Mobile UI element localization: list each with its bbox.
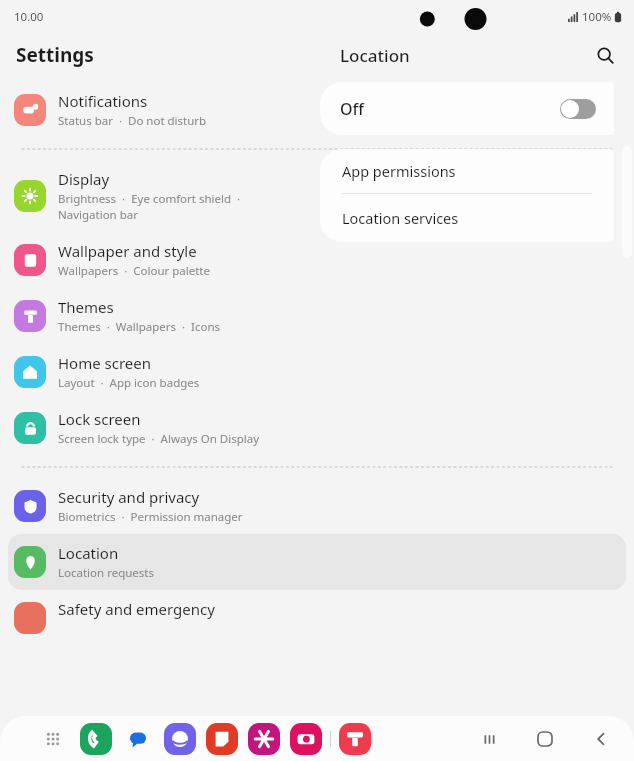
button[interactable]: Lock screen: [8, 400, 626, 456]
staticText: Location: [340, 44, 410, 67]
staticText: Screen lock type · Always On Display: [58, 431, 260, 447]
button[interactable]: Safety and emergency: [8, 590, 626, 646]
button[interactable]: Back: [586, 724, 616, 754]
staticText: Location requests: [58, 565, 154, 581]
button[interactable]: Wallpaper and style: [8, 232, 626, 288]
button[interactable]: Notes: [206, 723, 238, 755]
staticText: Themes: [58, 297, 114, 317]
staticText: Wallpapers · Colour palette: [58, 263, 210, 279]
button[interactable]: Apps: [40, 726, 66, 752]
staticText: Status bar · Do not disturb: [58, 113, 207, 129]
staticText: Location: [58, 543, 119, 563]
staticText: Safety and emergency: [58, 599, 215, 619]
staticText: Off: [340, 98, 364, 120]
button[interactable]: Gallery: [248, 723, 280, 755]
staticText: 100%: [582, 9, 612, 25]
button[interactable]: Search: [588, 38, 622, 72]
button[interactable]: Location services: [320, 194, 614, 242]
button[interactable]: Recents: [474, 724, 504, 754]
button[interactable]: Notifications: [8, 82, 626, 138]
staticText: 10.00: [14, 9, 44, 25]
staticText: Home screen: [58, 353, 152, 373]
button[interactable]: Themes: [8, 288, 626, 344]
button[interactable]: Internet: [164, 723, 196, 755]
staticText: Security and privacy: [58, 487, 200, 507]
staticText: Brightness · Eye comfort shield ·: [58, 191, 241, 207]
button[interactable]: Display: [8, 160, 626, 232]
button[interactable]: Themes: [339, 723, 371, 755]
button[interactable]: App permissions: [320, 149, 614, 193]
staticText: App permissions: [342, 161, 456, 181]
button[interactable]: Off: [320, 82, 614, 135]
button[interactable]: Phone: [80, 723, 112, 755]
button[interactable]: Messages: [122, 723, 154, 755]
staticText: Layout · App icon badges: [58, 375, 200, 391]
staticText: Biometrics · Permission manager: [58, 509, 243, 525]
button[interactable]: Home: [530, 724, 560, 754]
staticText: Display: [58, 169, 110, 189]
staticText: Lock screen: [58, 409, 141, 429]
button[interactable]: Home screen: [8, 344, 626, 400]
staticText: Wallpaper and style: [58, 241, 197, 261]
staticText: Settings: [16, 42, 94, 68]
staticText: Navigation bar: [58, 207, 138, 223]
button[interactable]: Location: [8, 534, 626, 590]
staticText: Location services: [342, 208, 459, 228]
button[interactable]: Camera: [290, 723, 322, 755]
button[interactable]: Security and privacy: [8, 478, 626, 534]
staticText: Notifications: [58, 91, 148, 111]
staticText: Themes · Wallpapers · Icons: [58, 319, 220, 335]
